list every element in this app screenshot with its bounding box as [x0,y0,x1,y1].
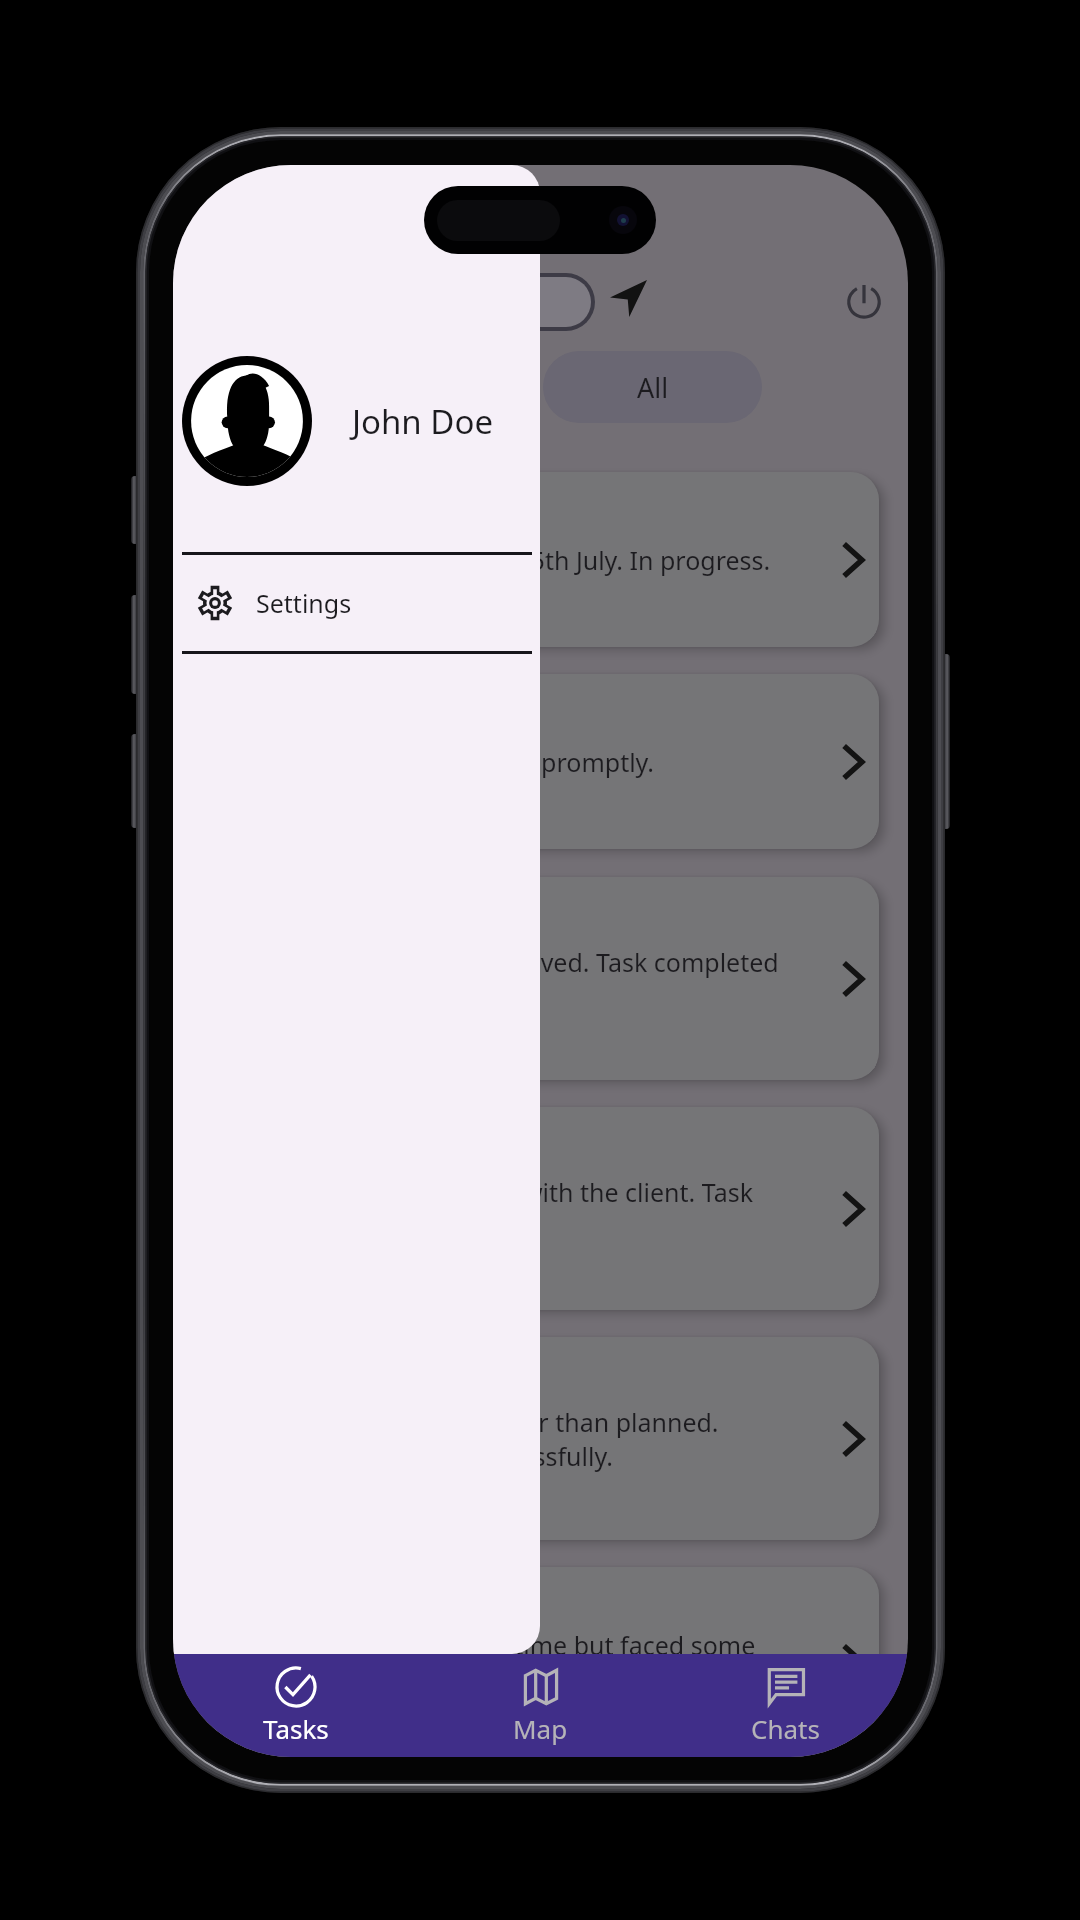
staticText: Worked quite some overtime but faced som… [227,1628,831,1696]
staticText: Tasks [263,1711,329,1746]
button[interactable]: Toggle [201,273,595,331]
button[interactable]: The job was finished earlier than planne… [201,1337,879,1540]
staticText: The job was finished earlier than planne… [227,1405,831,1473]
button[interactable]: Answered the call. Replied promptly. [201,674,879,849]
button[interactable]: Locate [604,274,652,322]
button[interactable]: All [543,351,762,423]
staticText: John Doe [352,399,494,444]
staticText: Went to the site and met with the client… [227,1175,831,1243]
button[interactable]: Sent over the quote, approved. Task comp… [201,877,879,1080]
staticText: Answered the call. Replied promptly. [227,745,831,779]
staticText: Arrived at the location on 5th July. In … [227,543,831,577]
button[interactable]: Power [841,279,887,325]
staticText: Chats [751,1711,820,1746]
button[interactable]: Settings [173,555,540,651]
button[interactable]: Arrived at the location on 5th July. In … [201,472,879,647]
button[interactable]: Chats [663,1654,908,1757]
button[interactable]: Map [418,1654,663,1757]
button[interactable]: John Doe [173,356,540,486]
staticText: All [637,369,669,406]
button[interactable]: Tasks [173,1654,418,1757]
staticText: Sent over the quote, approved. Task comp… [227,945,831,1013]
staticText: Map [513,1711,568,1746]
staticText: Settings [256,586,352,620]
button[interactable]: Went to the site and met with the client… [201,1107,879,1310]
button[interactable]: Worked quite some overtime but faced som… [201,1567,879,1757]
